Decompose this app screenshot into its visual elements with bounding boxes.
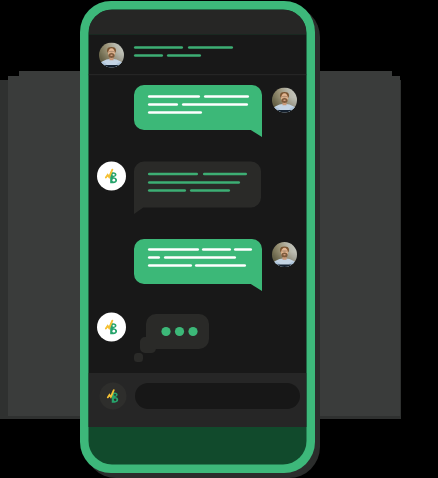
- button[interactable]: Chat conversation preview: [0, 0, 438, 478]
